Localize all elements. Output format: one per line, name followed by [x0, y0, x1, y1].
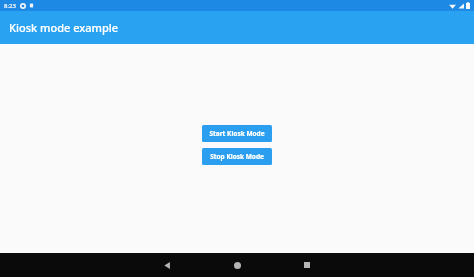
- button[interactable]: Stop Kiosk Mode: [202, 148, 272, 165]
- button[interactable]: Back: [132, 253, 202, 277]
- staticText: Kiosk mode example: [9, 20, 119, 35]
- staticText: Start Kiosk Mode: [209, 129, 265, 138]
- staticText: Stop Kiosk Mode: [210, 152, 264, 161]
- button[interactable]: Recent apps: [272, 253, 342, 277]
- staticText: 8:23: [4, 2, 16, 10]
- button[interactable]: Home: [202, 253, 272, 277]
- button[interactable]: Start Kiosk Mode: [202, 125, 272, 142]
